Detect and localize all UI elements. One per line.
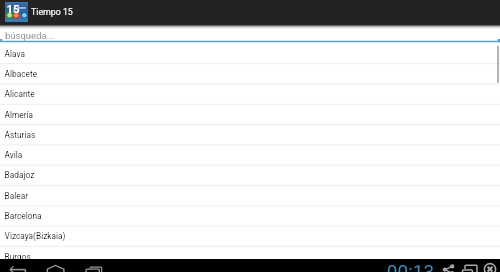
button[interactable]: Share xyxy=(440,259,459,272)
button[interactable] xyxy=(0,86,500,107)
button[interactable]: Home xyxy=(42,259,70,272)
button[interactable] xyxy=(0,191,500,212)
button[interactable] xyxy=(0,149,500,170)
button[interactable]: Back xyxy=(4,259,32,272)
button[interactable]: Recent apps xyxy=(80,259,108,272)
button[interactable] xyxy=(0,65,500,86)
button[interactable] xyxy=(0,170,500,191)
button[interactable] xyxy=(0,212,500,233)
button[interactable]: Dismiss xyxy=(481,259,500,272)
button[interactable] xyxy=(0,24,500,43)
button[interactable]: Tiempo 15 xyxy=(0,0,500,24)
staticText: Tiempo 15 xyxy=(31,7,73,17)
button[interactable] xyxy=(0,107,500,128)
button[interactable]: Screenshot xyxy=(459,259,478,272)
button[interactable] xyxy=(0,254,500,272)
button[interactable] xyxy=(0,233,500,254)
button[interactable] xyxy=(0,128,500,149)
button[interactable] xyxy=(0,44,500,65)
